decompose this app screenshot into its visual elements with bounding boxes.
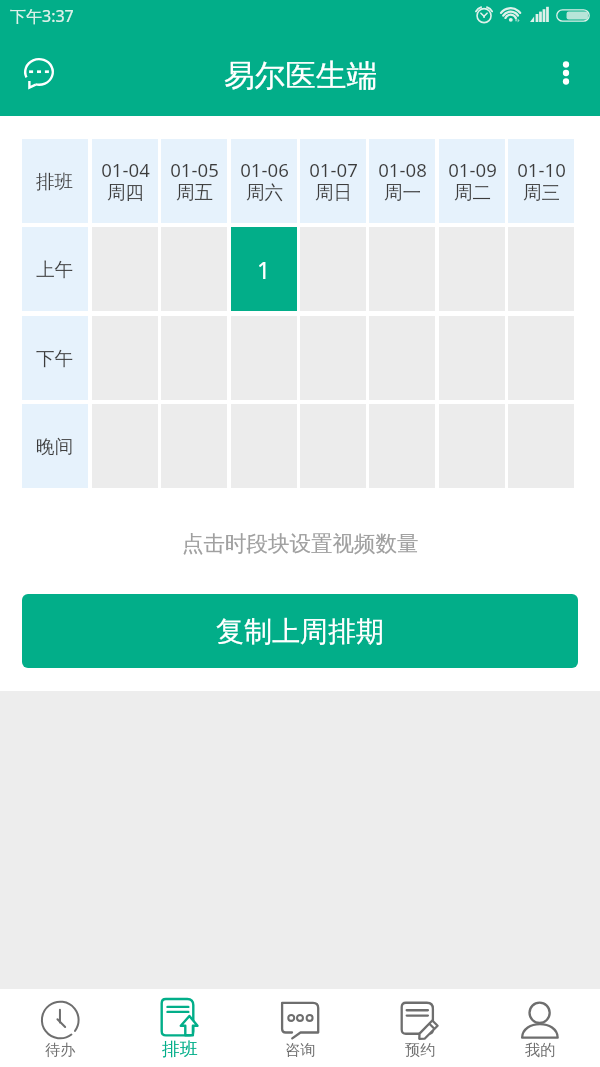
staticText: 01-07 周日: [309, 157, 358, 205]
staticText: 排班: [162, 1038, 198, 1060]
staticText: 待办: [45, 1040, 76, 1059]
button[interactable]: 我的: [480, 989, 600, 1067]
staticText: 1: [257, 254, 271, 285]
button[interactable]: More options: [542, 49, 590, 97]
staticText: 01-06 周六: [240, 157, 289, 205]
button[interactable]: Messages: [9, 43, 69, 103]
staticText: 复制上周排期: [216, 614, 384, 649]
staticText: 上午: [36, 258, 74, 281]
staticText: 咨询: [285, 1040, 316, 1059]
button[interactable]: 复制上周排期: [22, 594, 578, 668]
staticText: 01-08 周一: [378, 157, 427, 205]
button[interactable]: 待办: [0, 989, 120, 1067]
button[interactable]: 排班: [120, 989, 240, 1067]
staticText: 01-10 周三: [517, 157, 566, 205]
staticText: 01-04 周四: [101, 157, 150, 205]
button[interactable]: 预约: [360, 989, 480, 1067]
staticText: 下午: [36, 347, 74, 370]
staticText: 01-05 周五: [170, 157, 219, 205]
staticText: 点击时段块设置视频数量: [182, 530, 419, 557]
staticText: 预约: [405, 1040, 436, 1059]
staticText: 排班: [36, 170, 74, 193]
staticText: 下午3:37: [10, 5, 74, 27]
staticText: 01-09 周二: [448, 157, 497, 205]
button[interactable]: 咨询: [240, 989, 360, 1067]
staticText: 易尔医生端: [224, 57, 377, 96]
staticText: 我的: [525, 1040, 556, 1059]
button[interactable]: 1: [231, 227, 297, 311]
staticText: 晚间: [36, 435, 74, 458]
